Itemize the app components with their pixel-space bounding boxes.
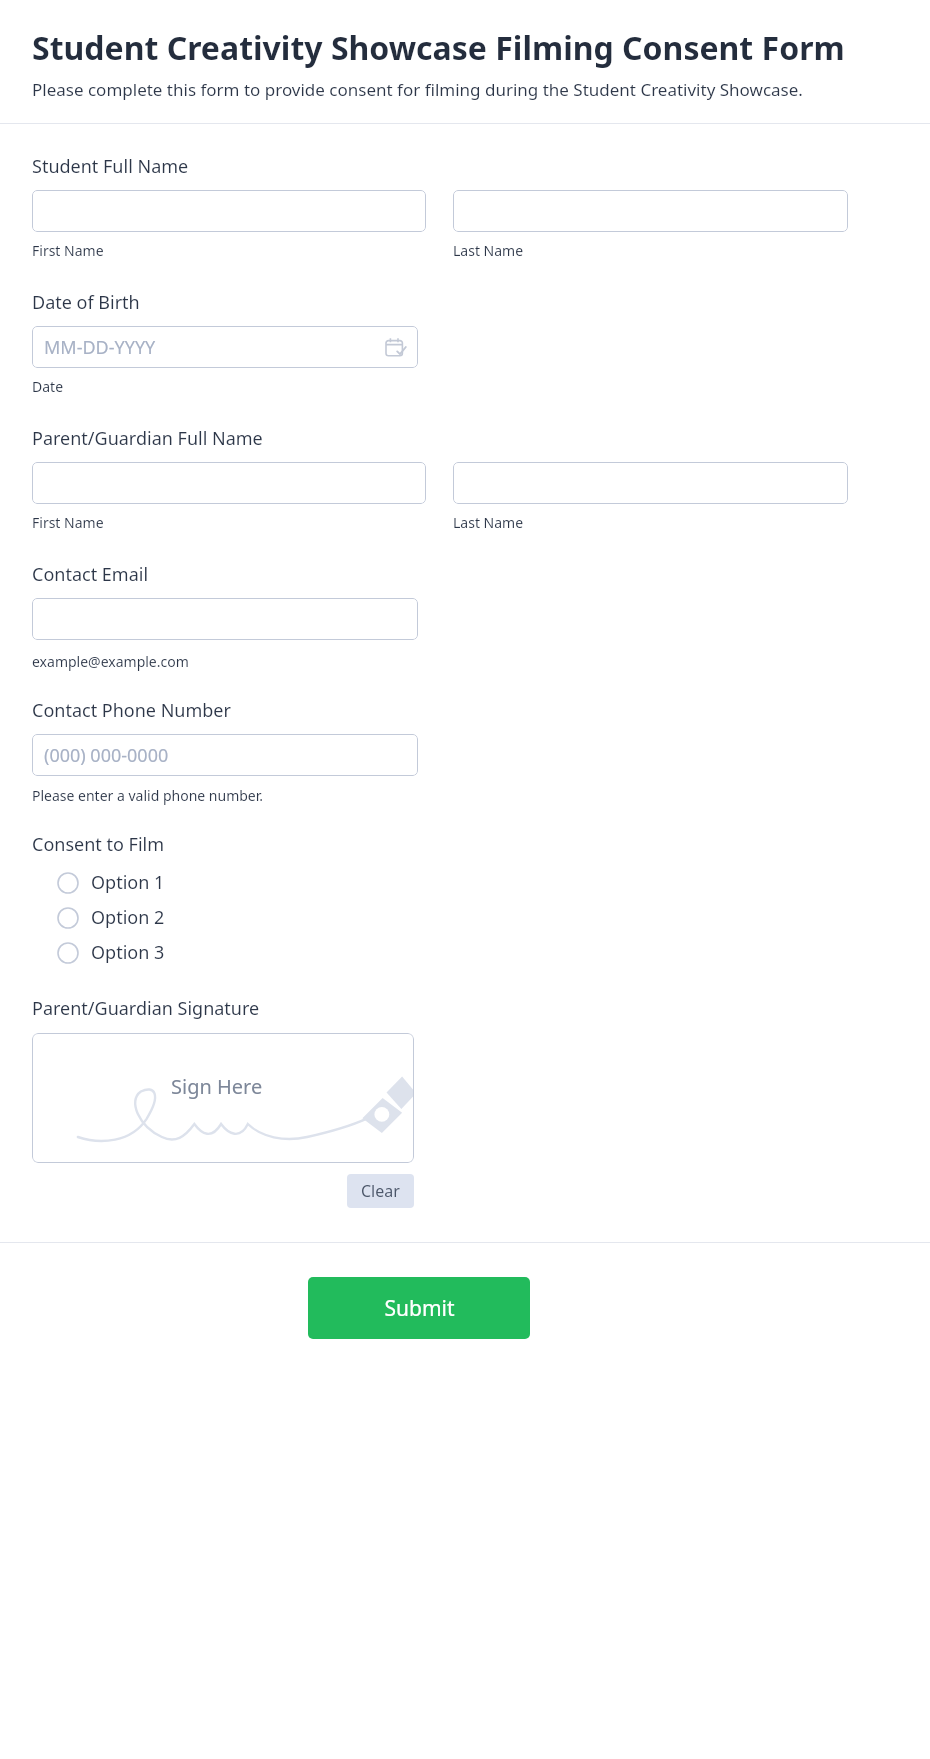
button[interactable]: Pick date	[386, 337, 406, 357]
staticText: Option 2	[91, 905, 165, 930]
staticText: Parent/Guardian Full Name	[32, 426, 263, 451]
staticText: Contact Email	[32, 562, 149, 587]
staticText: Sign Here	[171, 1073, 263, 1100]
staticText: Consent to Film	[32, 832, 164, 857]
staticText: Contact Phone Number	[32, 698, 231, 723]
button[interactable]: Signature pad, sign here	[32, 1033, 414, 1163]
staticText: Clear	[361, 1180, 400, 1202]
staticText: Please complete this form to provide con…	[32, 78, 803, 101]
staticText: Option 1	[91, 870, 165, 895]
staticText: Last Name	[453, 241, 524, 260]
button[interactable]: Submit	[308, 1277, 530, 1339]
button[interactable]: Option 1	[0, 865, 930, 900]
staticText: First Name	[32, 513, 104, 532]
staticText: MM-DD-YYYY	[44, 335, 156, 360]
staticText: Student Creativity Showcase Filming Cons…	[32, 26, 845, 70]
staticText: Last Name	[453, 513, 524, 532]
staticText: Date of Birth	[32, 290, 140, 315]
button[interactable]: Option 3	[0, 935, 930, 970]
button[interactable]: MM-DD-YYYY	[32, 326, 418, 368]
staticText: Please enter a valid phone number.	[32, 786, 264, 805]
button[interactable]	[32, 190, 426, 232]
button[interactable]: (000) 000-0000	[32, 734, 418, 776]
staticText: (000) 000-0000	[44, 743, 169, 768]
staticText: Student Full Name	[32, 154, 189, 179]
staticText: Date	[32, 377, 64, 396]
button[interactable]	[453, 190, 848, 232]
staticText: example@example.com	[32, 652, 189, 671]
staticText: Parent/Guardian Signature	[32, 996, 260, 1021]
button[interactable]: Option 2	[0, 900, 930, 935]
staticText: First Name	[32, 241, 104, 260]
button[interactable]	[32, 462, 426, 504]
button[interactable]	[32, 598, 418, 640]
button[interactable]	[453, 462, 848, 504]
button[interactable]: Clear	[347, 1174, 414, 1208]
staticText: Option 3	[91, 940, 165, 965]
staticText: Submit	[384, 1294, 455, 1323]
